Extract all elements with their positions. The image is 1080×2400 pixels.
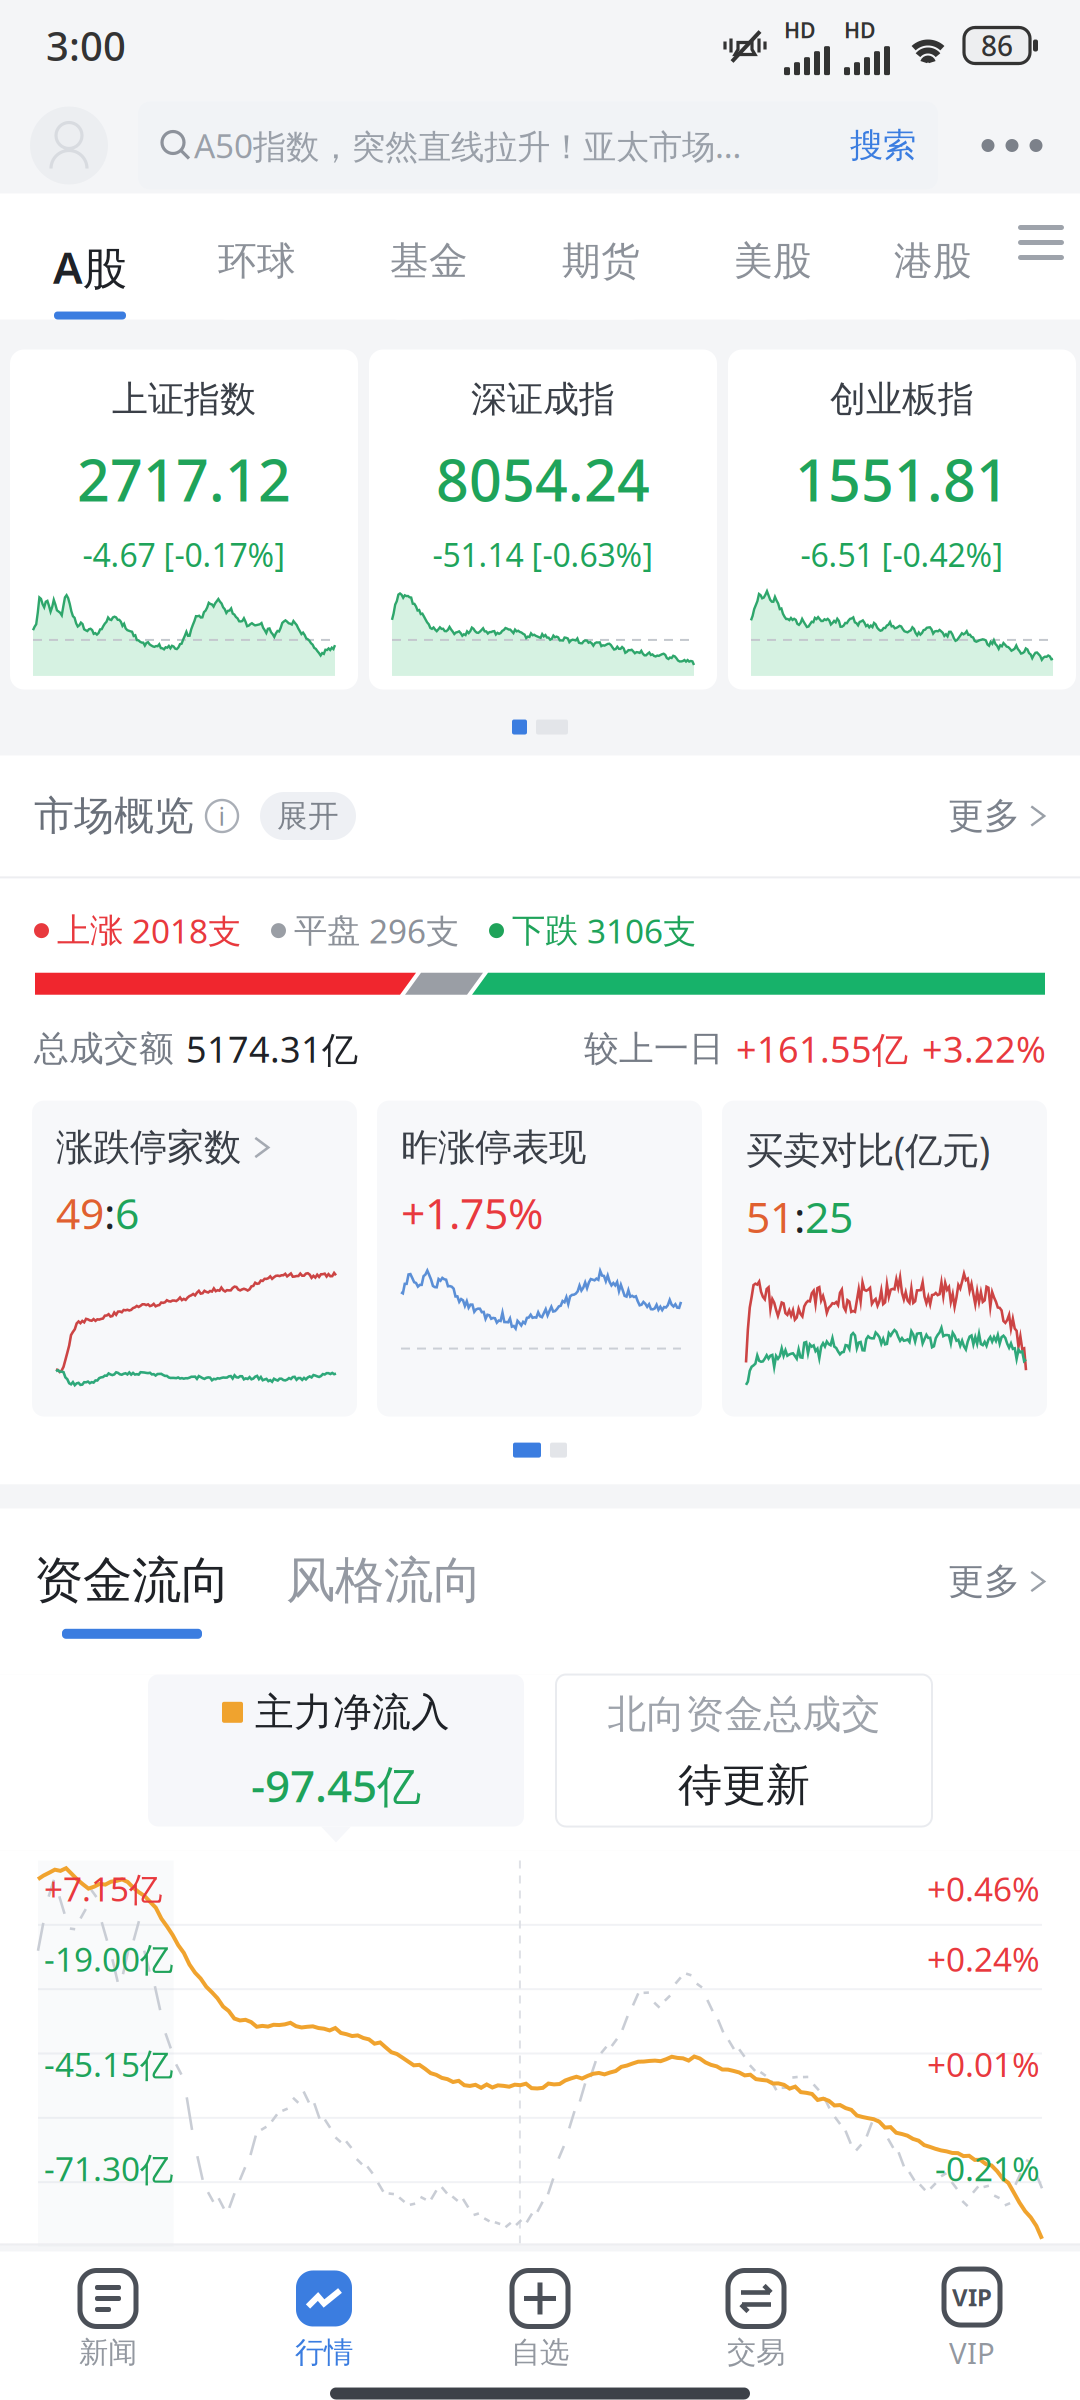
staticText: 资金流向 (34, 1550, 230, 1611)
staticText: -45.15亿 (44, 2042, 173, 2086)
staticText: 6 (115, 1184, 139, 1241)
staticText: 上涨 (57, 910, 123, 951)
button[interactable]: 风格流向 (286, 1528, 482, 1655)
staticText: -19.00亿 (44, 1937, 173, 1981)
staticText: +0.24% (927, 1937, 1040, 1981)
staticText: 交易 (727, 2334, 785, 2370)
button[interactable]: 上证指数 (10, 349, 358, 689)
button[interactable]: 交易 (648, 2261, 864, 2379)
staticText: 2018支 (132, 908, 241, 953)
staticText: 2717.12 (77, 441, 291, 517)
button[interactable]: More options (966, 106, 1058, 184)
button[interactable]: 创业板指 (728, 349, 1076, 689)
staticText: +3.22% (922, 1025, 1046, 1073)
staticText: 展开 (277, 797, 339, 835)
staticText: 涨跌停家数 (56, 1125, 241, 1170)
staticText: 风格流向 (286, 1550, 482, 1611)
staticText: 8054.24 (436, 441, 650, 517)
staticText: 86 (981, 27, 1013, 64)
staticText: 港股 (894, 237, 972, 285)
button[interactable]: 自选 (432, 2261, 648, 2379)
staticText: 主力净流入 (255, 1688, 450, 1736)
staticText: VIP (952, 2281, 992, 2313)
staticText: 搜索 (850, 125, 916, 166)
staticText: 期货 (562, 237, 640, 285)
staticText: 5174.31亿 (186, 1025, 358, 1073)
button[interactable]: 主力净流入 (148, 1674, 524, 1842)
button[interactable]: 昨涨停表现 (377, 1101, 702, 1417)
staticText: 美股 (734, 237, 812, 285)
staticText: 更多 (948, 1559, 1020, 1604)
staticText: 环球 (218, 237, 296, 285)
staticText: 更多 (948, 794, 1020, 838)
staticText: A50指数，突然直线拉升！亚太市场… (194, 123, 741, 168)
staticText: 北向资金总成交 (607, 1691, 880, 1738)
staticText: VIP (949, 2333, 995, 2372)
staticText: 总成交额 (34, 1027, 174, 1070)
staticText: 较上一日 (584, 1027, 724, 1070)
staticText: -71.30亿 (44, 2146, 173, 2191)
button[interactable]: 更多 (948, 1561, 1050, 1621)
button[interactable]: 美股 (687, 193, 859, 319)
button[interactable]: All categories (1007, 193, 1075, 319)
staticText: 创业板指 (830, 377, 974, 421)
button[interactable]: VIP (864, 2261, 1080, 2379)
button[interactable]: 北向资金总成交 (556, 1682, 932, 1834)
button[interactable]: 涨跌停家数 (32, 1101, 357, 1417)
staticText: +0.01% (927, 2042, 1040, 2086)
staticText: -97.45亿 (251, 1756, 421, 1814)
staticText: 深证成指 (471, 377, 615, 421)
button[interactable]: 期货 (515, 193, 687, 319)
staticText: 296支 (369, 908, 459, 953)
staticText: -4.67 [-0.17%] (82, 533, 285, 576)
staticText: 市场概览 (34, 791, 194, 840)
staticText: 51 (746, 1188, 794, 1245)
button[interactable]: 港股 (859, 193, 1007, 319)
staticText: 49 (56, 1184, 104, 1241)
staticText: +161.55亿 (736, 1025, 908, 1073)
staticText: 上证指数 (112, 377, 256, 421)
staticText: i (218, 799, 225, 833)
staticText: 3:00 (46, 19, 126, 72)
staticText: 基金 (390, 237, 468, 285)
staticText: -51.14 [-0.63%] (432, 533, 653, 576)
button[interactable]: 新闻 (0, 2261, 216, 2379)
staticText: 下跌 (512, 910, 578, 951)
button[interactable]: 环球 (171, 193, 343, 319)
staticText: +7.15亿 (44, 1866, 162, 1911)
button[interactable]: 行情 (216, 2261, 432, 2379)
staticText: : (794, 1188, 805, 1245)
button[interactable]: 基金 (343, 193, 515, 319)
button[interactable]: 更多 (948, 786, 1050, 846)
button[interactable]: A50指数，突然直线拉升！亚太市场… (138, 101, 938, 189)
staticText: : (104, 1184, 115, 1241)
staticText: +1.75% (401, 1184, 543, 1241)
button[interactable]: A股 (9, 193, 171, 319)
button[interactable]: Profile (30, 106, 108, 184)
staticText: 行情 (295, 2334, 353, 2370)
staticText: -0.21% (935, 2146, 1040, 2191)
staticText: -6.51 [-0.42%] (800, 533, 1003, 576)
button[interactable]: 买卖对比(亿元) (722, 1101, 1047, 1417)
staticText: 1551.81 (795, 441, 1009, 517)
staticText: 25 (805, 1188, 853, 1245)
staticText: +0.46% (927, 1866, 1040, 1911)
staticText: 新闻 (79, 2334, 137, 2370)
staticText: 3106支 (587, 908, 696, 953)
staticText: HD (784, 16, 816, 44)
staticText: 昨涨停表现 (401, 1125, 586, 1170)
staticText: 待更新 (678, 1758, 810, 1812)
button[interactable]: 深证成指 (369, 349, 717, 689)
staticText: HD (844, 16, 876, 44)
staticText: 自选 (511, 2334, 569, 2370)
staticText: 买卖对比(亿元) (746, 1125, 990, 1174)
button[interactable]: 资金流向 (34, 1528, 230, 1655)
button[interactable]: 展开 (260, 792, 356, 840)
staticText: 平盘 (294, 910, 360, 951)
staticText: A股 (53, 237, 127, 296)
